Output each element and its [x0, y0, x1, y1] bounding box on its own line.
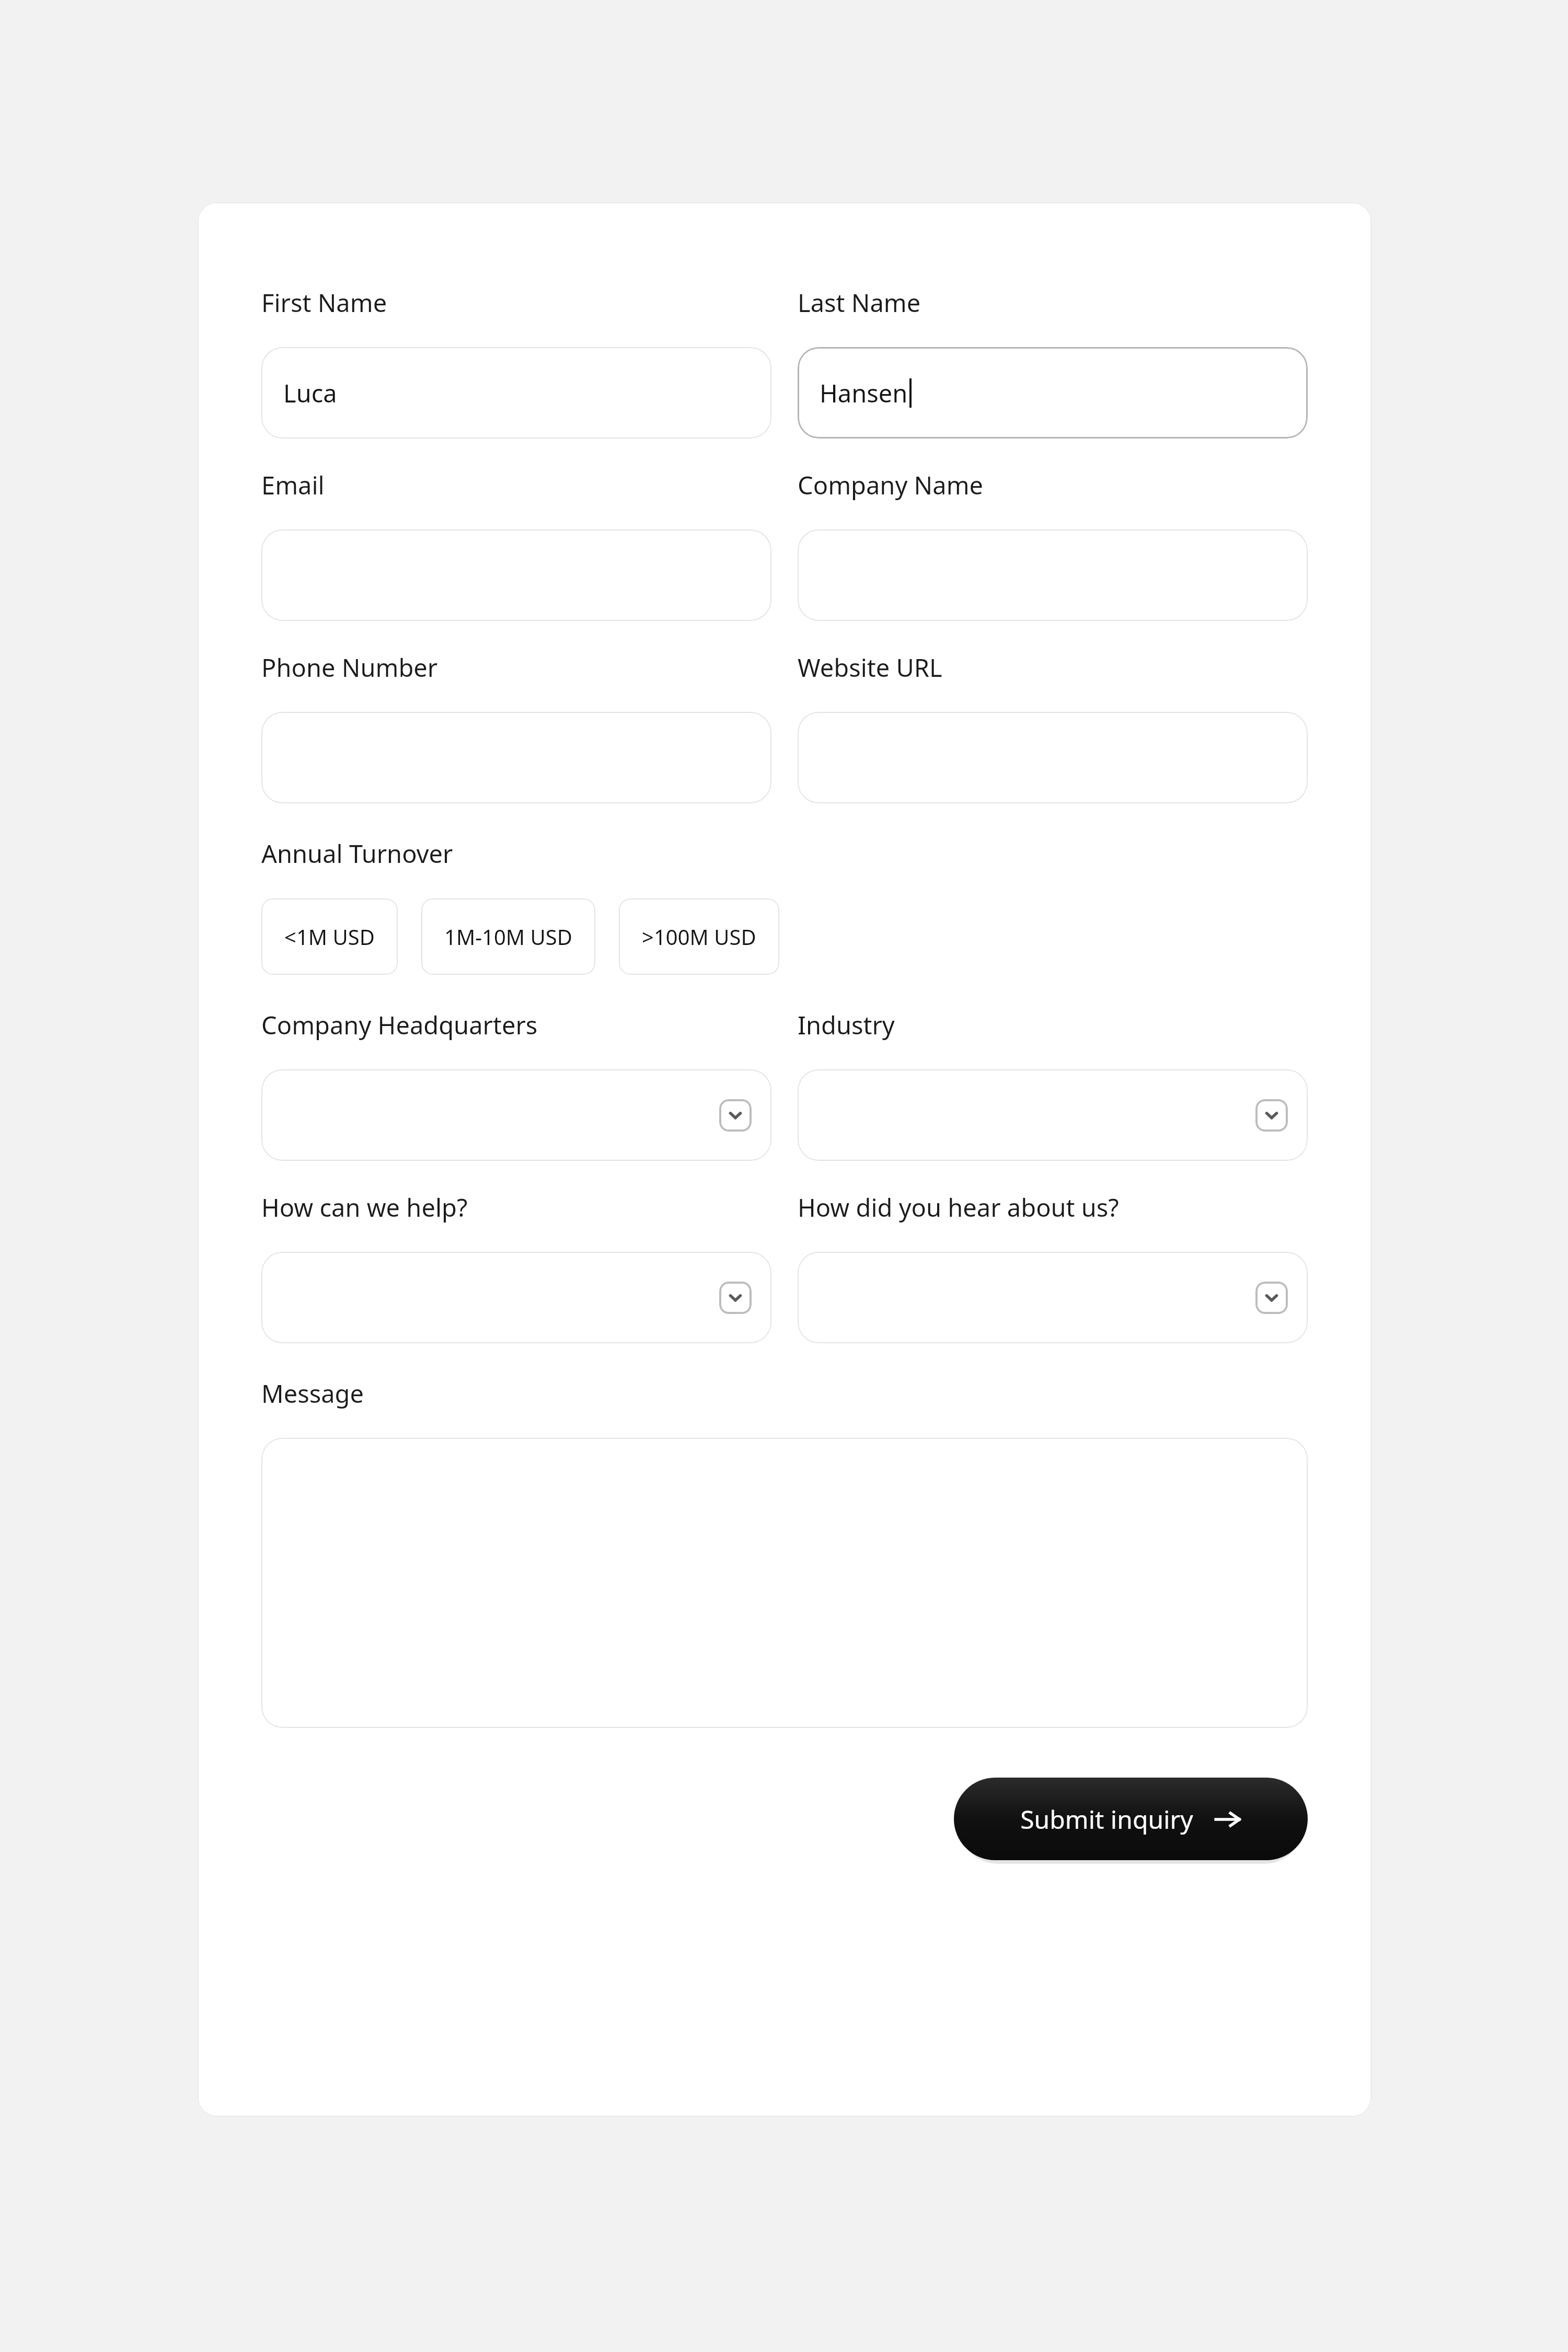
staticText: Website URL — [798, 651, 942, 684]
button[interactable]: Luca — [261, 347, 771, 439]
button[interactable]: Open Industry options — [798, 1069, 1308, 1161]
button[interactable]: Open How can we help? options — [261, 1252, 771, 1343]
button[interactable]: Open How can we help? options — [719, 1282, 752, 1314]
staticText: Annual Turnover — [261, 837, 453, 870]
staticText: Luca — [283, 376, 337, 410]
staticText: Phone Number — [261, 651, 438, 684]
staticText: How can we help? — [261, 1191, 468, 1224]
button[interactable] — [261, 529, 771, 621]
staticText: 1M-10M USD — [444, 923, 572, 951]
staticText: Hansen — [820, 376, 908, 410]
staticText: <1M USD — [284, 923, 375, 951]
staticText: First Name — [261, 286, 387, 319]
staticText: Company Name — [798, 468, 984, 502]
staticText: Last Name — [798, 286, 921, 319]
button[interactable] — [798, 529, 1308, 621]
staticText: Industry — [798, 1008, 895, 1042]
button[interactable]: Open Company Headquarters options — [719, 1099, 752, 1132]
button[interactable] — [798, 712, 1308, 803]
staticText: How did you hear about us? — [798, 1191, 1119, 1224]
button[interactable] — [261, 712, 771, 803]
staticText: >100M USD — [642, 923, 756, 951]
button[interactable]: >100M USD — [619, 898, 779, 975]
button[interactable]: <1M USD — [261, 898, 398, 975]
staticText: Message — [261, 1377, 364, 1410]
button[interactable]: Open Company Headquarters options — [261, 1069, 771, 1161]
button[interactable]: 1M-10M USD — [421, 898, 595, 975]
button[interactable]: Open Industry options — [1255, 1099, 1288, 1132]
button[interactable]: Open How did you hear about us? options — [1255, 1282, 1288, 1314]
staticText: Company Headquarters — [261, 1008, 538, 1042]
button[interactable]: Hansen — [798, 347, 1308, 439]
button[interactable]: Submit inquiry — [954, 1778, 1308, 1860]
button[interactable]: Open How did you hear about us? options — [798, 1252, 1308, 1343]
staticText: Submit inquiry — [1020, 1802, 1193, 1836]
staticText: Email — [261, 468, 325, 502]
